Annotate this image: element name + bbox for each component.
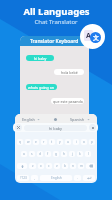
button[interactable]: f <box>45 151 51 157</box>
staticText: j <box>72 152 73 156</box>
staticText: o <box>83 140 85 144</box>
button[interactable]: hi baby <box>26 55 54 61</box>
button[interactable]: Shift <box>17 163 27 169</box>
staticText: k <box>79 152 81 156</box>
staticText: i <box>76 140 77 144</box>
button[interactable]: y <box>57 139 63 145</box>
button[interactable]: t <box>49 139 55 145</box>
button[interactable]: n <box>70 163 76 169</box>
staticText: ?123 <box>20 176 27 180</box>
staticText: y <box>59 140 61 144</box>
staticText: d <box>39 152 41 156</box>
button[interactable]: g <box>53 151 59 157</box>
staticText: c <box>48 164 50 168</box>
staticText: m <box>80 164 83 168</box>
staticText: 文 <box>93 34 99 42</box>
staticText: b <box>64 164 66 168</box>
button[interactable]: que este pasando <box>51 98 84 104</box>
staticText: hi baby <box>34 56 47 61</box>
button[interactable]: b <box>62 163 68 169</box>
button[interactable]: Swap languages <box>53 117 58 122</box>
staticText: Chat Translator <box>34 18 78 26</box>
button[interactable]: h <box>61 151 67 157</box>
button[interactable]: z <box>29 163 36 169</box>
button[interactable]: x <box>38 163 44 169</box>
button[interactable]: Clear text <box>15 124 22 131</box>
staticText: n <box>72 164 74 168</box>
button[interactable]: English <box>22 117 56 122</box>
staticText: x <box>40 164 42 168</box>
button[interactable]: w <box>25 139 31 145</box>
staticText: . <box>77 176 78 180</box>
staticText: l <box>88 152 89 156</box>
staticText: whats going on <box>28 85 55 90</box>
button[interactable]: Enter <box>83 175 95 181</box>
button[interactable]: ?123 <box>17 175 29 181</box>
button[interactable]: p <box>89 139 95 145</box>
button[interactable]: l <box>85 151 91 157</box>
staticText: All Languages <box>23 5 90 18</box>
button[interactable]: k <box>77 151 83 157</box>
staticText: English <box>22 117 35 122</box>
staticText: f <box>47 152 49 156</box>
staticText: h <box>63 152 65 156</box>
button[interactable]: m <box>78 163 84 169</box>
button[interactable]: hi baby <box>24 125 87 131</box>
staticText: Spanish <box>70 117 85 122</box>
button[interactable]: whats going on <box>26 84 57 90</box>
button[interactable]: Translate <box>89 124 96 131</box>
button[interactable]: App logo <box>80 24 105 49</box>
staticText: hi baby <box>49 126 62 131</box>
staticText: v <box>56 164 58 168</box>
button[interactable]: u <box>65 139 71 145</box>
staticText: e <box>35 140 37 144</box>
button[interactable]: Backspace <box>86 163 95 169</box>
staticText: Translator Keyboard <box>30 38 79 45</box>
button[interactable]: s <box>29 151 35 157</box>
button[interactable]: Spanish <box>56 117 90 122</box>
staticText: q <box>19 140 21 144</box>
button[interactable]: q <box>17 139 23 145</box>
staticText: u <box>67 140 69 144</box>
staticText: s <box>31 152 33 156</box>
button[interactable]: . <box>74 175 81 181</box>
staticText: English <box>51 176 62 180</box>
staticText: , <box>34 176 35 180</box>
staticText: a <box>23 152 25 156</box>
staticText: t <box>51 140 53 144</box>
button[interactable]: a <box>21 151 27 157</box>
staticText: que este pasando <box>53 99 83 104</box>
button[interactable]: i <box>73 139 79 145</box>
staticText: w <box>27 140 30 144</box>
button[interactable]: o <box>81 139 87 145</box>
staticText: A <box>86 31 91 41</box>
button[interactable]: hola bebé <box>54 69 84 75</box>
button[interactable]: , <box>31 175 38 181</box>
staticText: hola bebé <box>61 70 78 75</box>
button[interactable]: v <box>54 163 60 169</box>
button[interactable]: r <box>41 139 47 145</box>
button[interactable]: English <box>40 175 72 181</box>
staticText: r <box>43 140 45 144</box>
button[interactable]: j <box>69 151 75 157</box>
button[interactable]: c <box>46 163 52 169</box>
staticText: z <box>32 164 34 168</box>
button[interactable]: e <box>33 139 39 145</box>
button[interactable]: d <box>37 151 43 157</box>
staticText: p <box>91 140 93 144</box>
staticText: g <box>55 152 57 156</box>
